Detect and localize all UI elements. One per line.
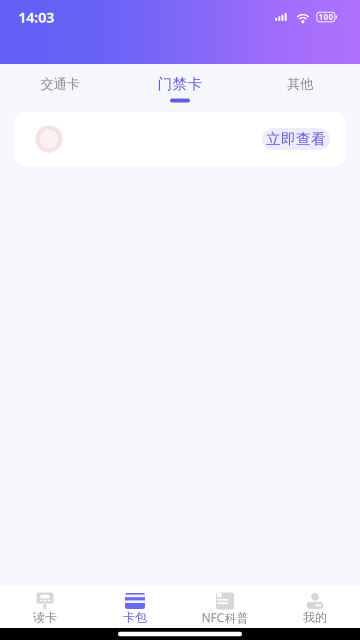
staticText: 读卡: [33, 610, 57, 625]
staticText: 我的: [303, 610, 327, 625]
staticText: NFC科普: [201, 609, 248, 625]
staticText: 100: [318, 12, 333, 22]
button[interactable]: 我的: [270, 583, 360, 631]
button[interactable]: 读卡: [0, 583, 90, 631]
staticText: 立即查看: [266, 130, 326, 148]
staticText: 交通卡: [40, 76, 79, 92]
button[interactable]: 其他: [240, 63, 360, 110]
staticText: 其他: [287, 76, 313, 92]
staticText: 门禁卡: [157, 75, 202, 93]
button[interactable]: 卡包: [90, 583, 180, 631]
button[interactable]: 门禁卡: [120, 63, 240, 110]
staticText: 14:03: [18, 7, 54, 27]
button[interactable]: NFC科普: [180, 583, 270, 631]
button[interactable]: 交通卡: [0, 63, 120, 110]
staticText: 卡包: [123, 610, 147, 625]
button[interactable]: 立即查看: [262, 128, 330, 150]
